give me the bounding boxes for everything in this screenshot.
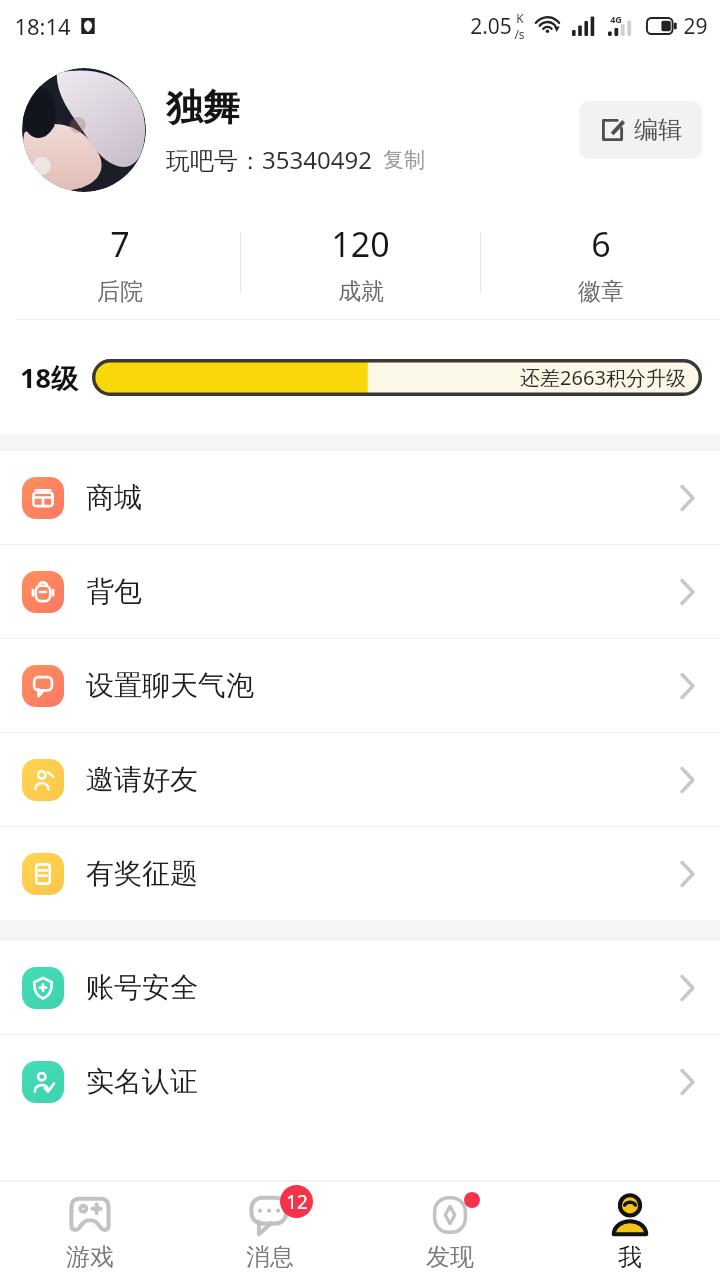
staticText: 发现: [426, 1242, 474, 1272]
staticText: 还差2663积分升级: [520, 364, 686, 391]
button[interactable]: 设置聊天气泡: [0, 639, 720, 732]
staticText: 12: [286, 1189, 308, 1215]
staticText: 4G: [610, 13, 622, 25]
staticText: 18:14: [14, 11, 71, 41]
staticText: 7: [110, 221, 130, 267]
button[interactable]: 实名认证: [0, 1035, 720, 1128]
button[interactable]: 有奖征题: [0, 827, 720, 920]
staticText: 背包: [86, 574, 142, 609]
button[interactable]: 我: [540, 1182, 720, 1280]
staticText: 成就: [338, 277, 384, 306]
staticText: 6: [591, 221, 611, 267]
staticText: 独舞: [166, 84, 240, 131]
button[interactable]: 12: [180, 1182, 360, 1280]
staticText: 后院: [97, 277, 143, 306]
staticText: 商城: [86, 480, 142, 515]
staticText: 设置聊天气泡: [86, 668, 254, 703]
button[interactable]: 6: [481, 207, 720, 319]
button[interactable]: 背包: [0, 545, 720, 638]
button[interactable]: 头像: [22, 68, 146, 192]
staticText: 消息: [246, 1242, 294, 1272]
button[interactable]: 账号安全: [0, 941, 720, 1034]
button[interactable]: 120: [241, 207, 480, 319]
staticText: 2.05: [470, 12, 512, 41]
button[interactable]: 游戏: [0, 1182, 180, 1280]
staticText: /s: [514, 26, 525, 42]
staticText: 120: [331, 221, 390, 267]
button[interactable]: 编辑: [579, 101, 702, 159]
staticText: 编辑: [634, 115, 682, 145]
button[interactable]: 商城: [0, 451, 720, 544]
staticText: 有奖征题: [86, 856, 198, 891]
staticText: 账号安全: [86, 970, 198, 1005]
staticText: 游戏: [66, 1242, 114, 1272]
button[interactable]: 发现: [360, 1182, 540, 1280]
staticText: 徽章: [578, 277, 624, 306]
staticText: 实名认证: [86, 1064, 198, 1099]
staticText: K: [516, 10, 524, 26]
button[interactable]: 还差2663积分升级: [92, 359, 702, 396]
staticText: 29: [683, 12, 708, 41]
staticText: 邀请好友: [86, 762, 198, 797]
button[interactable]: 7: [0, 207, 240, 319]
button[interactable]: 邀请好友: [0, 733, 720, 826]
staticText: 我: [618, 1242, 642, 1272]
button[interactable]: 复制: [381, 144, 427, 176]
staticText: 18级: [20, 359, 78, 396]
staticText: 复制: [383, 147, 425, 173]
staticText: 玩吧号：35340492: [166, 143, 372, 176]
